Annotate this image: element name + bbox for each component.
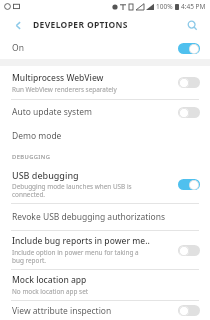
button[interactable]: Revoke USB debugging authorizations [0,204,210,230]
staticText: Run WebView renderers separately [12,85,117,94]
button[interactable]: Mock location app [0,270,210,300]
button[interactable]: Toggle on [178,179,200,190]
staticText: Auto update system [12,106,92,118]
staticText: DEVELOPER OPTIONS [33,19,128,31]
staticText: Multiprocess WebView [12,72,104,84]
button[interactable]: USB debugging [0,165,210,203]
button[interactable]: Toggle on [178,43,200,54]
staticText: Mock location app [12,274,87,286]
staticText: View attribute inspection [12,305,112,317]
button[interactable]: Toggle off [178,107,200,118]
button[interactable]: Multiprocess WebView [0,66,210,99]
button[interactable]: Include bug reports in power me.. [0,231,210,269]
staticText: Include bug reports in power me.. [12,235,150,247]
button[interactable]: Toggle off [178,77,200,88]
staticText: DEBUGGING [12,153,51,161]
staticText: No mock location app set [12,287,89,296]
staticText: Debugging mode launches when USB is conn… [12,182,132,199]
button[interactable]: Toggle off [178,245,200,256]
button[interactable]: Toggle off [178,305,200,316]
staticText: 100% [156,2,173,11]
button[interactable]: Auto update system [0,100,210,124]
staticText: USB debugging [12,169,79,181]
button[interactable]: Demo mode [0,124,210,148]
staticText: 4:45 PM [181,2,206,11]
button[interactable]: View attribute inspection [0,301,210,320]
staticText: Revoke USB debugging authorizations [12,211,166,223]
staticText: Demo mode [12,130,62,142]
staticText: Include option in power menu for taking … [12,248,139,265]
staticText: On [12,42,24,54]
button[interactable]: On [0,37,210,59]
button[interactable]: Search [183,16,201,34]
button[interactable]: Back [10,17,26,33]
